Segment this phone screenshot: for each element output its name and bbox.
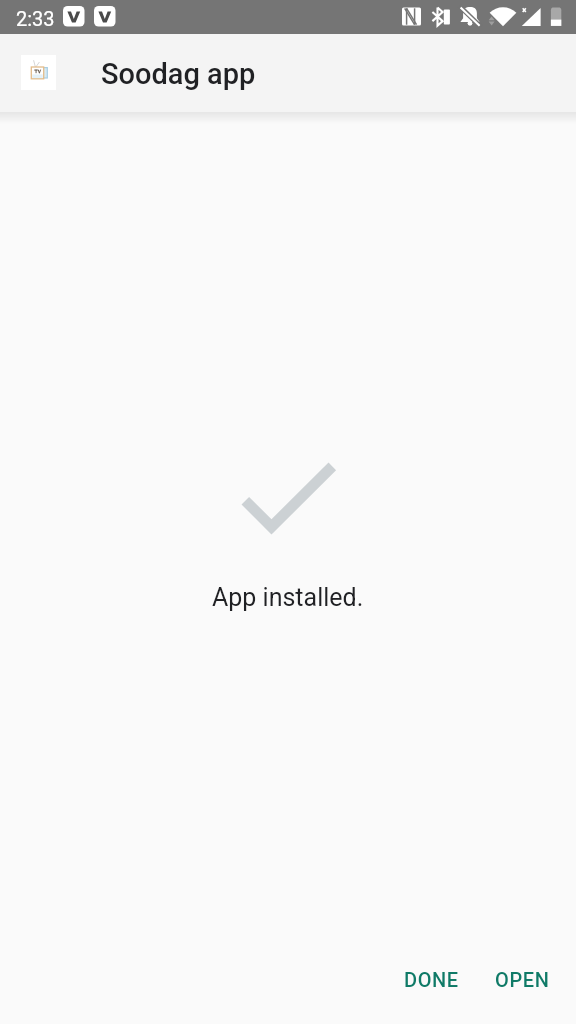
other: Notification xyxy=(94,6,116,27)
staticText: OPEN xyxy=(495,968,550,991)
other: Notification xyxy=(63,6,85,27)
staticText: DONE xyxy=(404,968,459,991)
button[interactable]: DONE xyxy=(391,959,472,999)
button[interactable]: OPEN xyxy=(482,959,563,999)
other: System status icons xyxy=(400,0,576,34)
staticText: Soodag app xyxy=(101,57,256,91)
button[interactable]: Soodag app icon xyxy=(13,47,64,98)
staticText: 2:33 xyxy=(16,7,55,30)
staticText: App installed. xyxy=(212,583,364,612)
